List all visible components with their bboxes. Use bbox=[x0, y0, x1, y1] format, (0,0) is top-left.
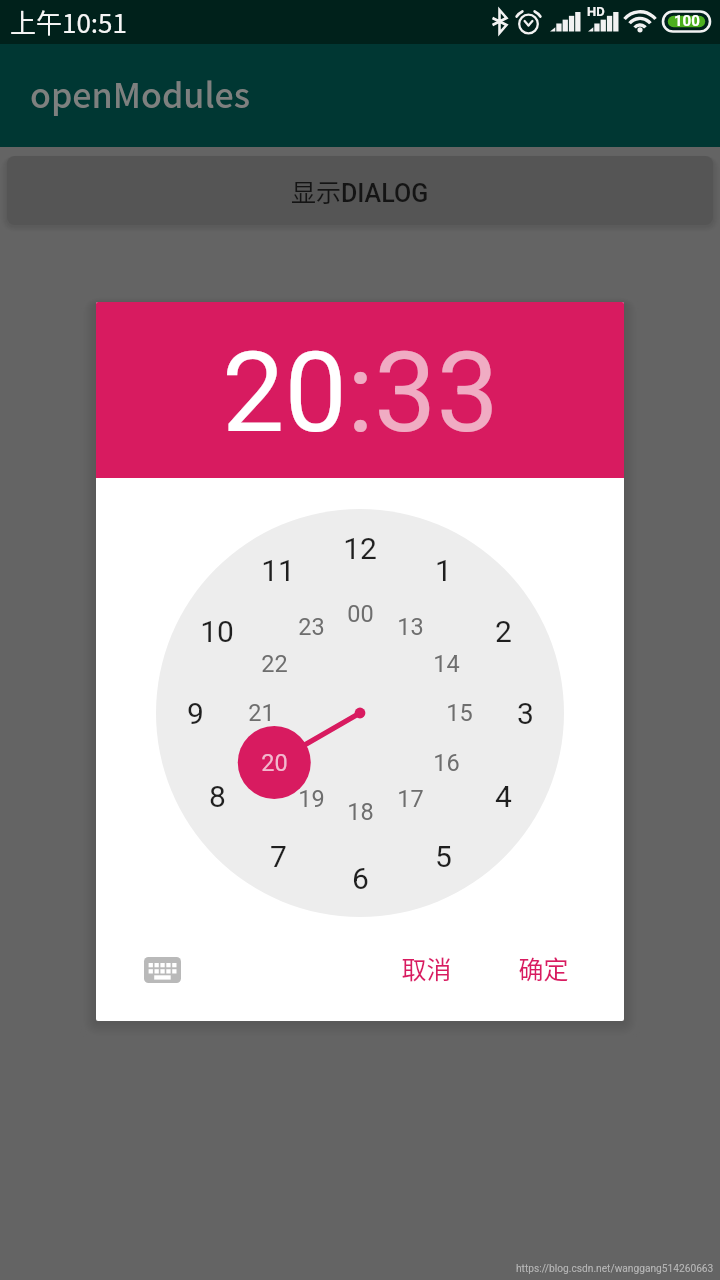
button[interactable]: 13 bbox=[374, 599, 446, 655]
staticText: 19 bbox=[298, 785, 325, 813]
staticText: 7 bbox=[270, 839, 287, 874]
button[interactable]: 5 bbox=[407, 828, 479, 884]
button[interactable]: 18 bbox=[324, 784, 396, 840]
button[interactable]: 取消 bbox=[382, 936, 470, 1000]
staticText: 00 bbox=[347, 600, 374, 628]
staticText: 11 bbox=[261, 553, 295, 588]
staticText: 13 bbox=[397, 613, 424, 641]
button[interactable]: 4 bbox=[467, 768, 539, 824]
button[interactable]: 显示DIALOG bbox=[7, 156, 713, 225]
staticText: https://blog.csdn.net/wanggang514260663 bbox=[516, 1263, 714, 1275]
button[interactable]: 10 bbox=[181, 603, 253, 659]
button[interactable]: 14 bbox=[410, 636, 482, 692]
staticText: 10 bbox=[200, 614, 234, 649]
button[interactable]: 2 bbox=[467, 603, 539, 659]
button[interactable]: 确定 bbox=[499, 936, 587, 1000]
button[interactable]: 20 bbox=[238, 735, 310, 791]
staticText: 14 bbox=[433, 650, 460, 678]
staticText: 6 bbox=[352, 861, 369, 896]
staticText: 15 bbox=[446, 699, 473, 727]
staticText: 100 bbox=[674, 12, 700, 30]
button[interactable]: 23 bbox=[275, 599, 347, 655]
staticText: 16 bbox=[433, 749, 460, 777]
staticText: 22 bbox=[261, 650, 288, 678]
staticText: 确定 bbox=[518, 950, 569, 986]
button[interactable]: 7 bbox=[242, 828, 314, 884]
button[interactable]: Switch to keyboard input bbox=[130, 946, 194, 994]
staticText: openModules bbox=[30, 69, 251, 118]
button[interactable]: 8 bbox=[181, 768, 253, 824]
button[interactable]: 1 bbox=[407, 542, 479, 598]
staticText: 上午10:51 bbox=[10, 3, 127, 41]
staticText: : bbox=[347, 328, 374, 458]
button[interactable]: 21 bbox=[225, 685, 297, 741]
button[interactable]: 00 bbox=[324, 586, 396, 642]
button[interactable]: 11 bbox=[242, 542, 314, 598]
button[interactable]: 15 bbox=[423, 685, 495, 741]
button[interactable]: 6 bbox=[324, 850, 396, 906]
staticText: 23 bbox=[298, 613, 325, 641]
button[interactable]: 9 bbox=[159, 685, 231, 741]
button[interactable]: 33 bbox=[374, 328, 499, 458]
button[interactable]: 12 bbox=[324, 520, 396, 576]
staticText: 33 bbox=[374, 328, 499, 458]
button[interactable]: 19 bbox=[275, 771, 347, 827]
staticText: 1 bbox=[435, 553, 452, 588]
staticText: 3 bbox=[517, 696, 534, 731]
staticText: 5 bbox=[435, 839, 452, 874]
staticText: 20 bbox=[261, 749, 288, 777]
button[interactable]: 20 bbox=[222, 328, 347, 458]
staticText: 4 bbox=[495, 779, 512, 814]
staticText: 21 bbox=[248, 699, 275, 727]
button[interactable]: 22 bbox=[238, 636, 310, 692]
button[interactable]: 17 bbox=[374, 771, 446, 827]
staticText: 9 bbox=[187, 696, 204, 731]
staticText: 12 bbox=[343, 531, 377, 566]
staticText: 18 bbox=[347, 798, 374, 826]
staticText: 8 bbox=[209, 779, 226, 814]
staticText: 17 bbox=[397, 785, 424, 813]
staticText: HD bbox=[587, 4, 605, 19]
button[interactable]: 3 bbox=[489, 685, 561, 741]
staticText: 20 bbox=[222, 328, 347, 458]
staticText: 显示DIALOG bbox=[291, 173, 429, 209]
button[interactable]: 16 bbox=[410, 735, 482, 791]
staticText: 2 bbox=[495, 614, 512, 649]
staticText: 取消 bbox=[401, 950, 452, 986]
